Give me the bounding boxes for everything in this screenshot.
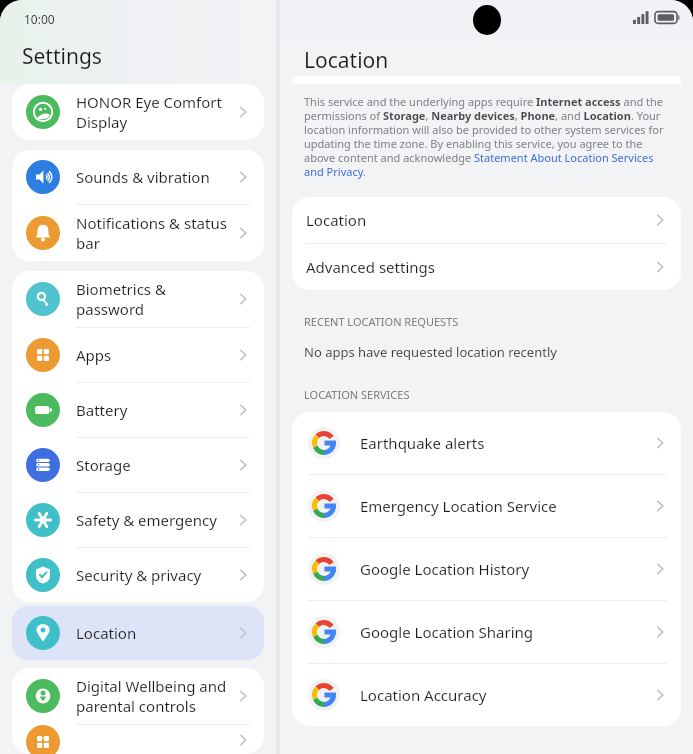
staticText: Location Accuracy bbox=[360, 685, 647, 705]
button[interactable]: Safety & emergency bbox=[12, 493, 264, 547]
button[interactable]: HONOR Eye Comfort Display bbox=[12, 84, 264, 140]
staticText: Google Location History bbox=[360, 559, 647, 579]
button[interactable]: Google Location Sharing bbox=[292, 601, 681, 663]
staticText: Biometrics & password bbox=[76, 279, 230, 319]
staticText: Battery bbox=[76, 400, 230, 420]
staticText: Google Location Sharing bbox=[360, 622, 647, 642]
staticText: Apps bbox=[76, 345, 230, 365]
button[interactable]: Earthquake alerts bbox=[292, 412, 681, 474]
staticText: Location bbox=[304, 46, 389, 75]
button[interactable]: Location bbox=[292, 197, 681, 243]
staticText: Safety & emergency bbox=[76, 510, 230, 530]
staticText: Notifications & status bar bbox=[76, 213, 230, 253]
staticText: This service and the underlying apps req… bbox=[304, 94, 673, 179]
staticText: Advanced settings bbox=[306, 257, 653, 277]
staticText: Digital Wellbeing and parental controls bbox=[76, 676, 230, 716]
button[interactable]: Emergency Location Service bbox=[292, 475, 681, 537]
staticText: Location bbox=[76, 623, 230, 643]
staticText: Storage bbox=[76, 455, 230, 475]
button[interactable] bbox=[12, 725, 264, 754]
button[interactable]: Apps bbox=[12, 328, 264, 382]
staticText: HONOR Eye Comfort Display bbox=[76, 92, 230, 132]
staticText: Security & privacy bbox=[76, 565, 230, 585]
button[interactable]: Sounds & vibration bbox=[12, 150, 264, 204]
button[interactable]: Advanced settings bbox=[292, 244, 681, 290]
staticText: Emergency Location Service bbox=[360, 496, 647, 516]
button[interactable]: Location Accuracy bbox=[292, 664, 681, 726]
staticText: RECENT LOCATION REQUESTS bbox=[304, 314, 459, 329]
button[interactable]: Security & privacy bbox=[12, 548, 264, 602]
button[interactable]: Notifications & status bar bbox=[12, 205, 264, 261]
button[interactable]: Battery bbox=[12, 383, 264, 437]
button[interactable]: Location bbox=[12, 606, 264, 660]
staticText: Earthquake alerts bbox=[360, 433, 647, 453]
staticText: 10:00 bbox=[24, 11, 55, 27]
staticText: No apps have requested location recently bbox=[304, 343, 557, 361]
staticText: Location bbox=[306, 210, 653, 230]
staticText: Sounds & vibration bbox=[76, 167, 230, 187]
staticText: LOCATION SERVICES bbox=[304, 387, 410, 402]
staticText: Settings bbox=[22, 42, 102, 71]
button[interactable]: Google Location History bbox=[292, 538, 681, 600]
button[interactable]: Digital Wellbeing and parental controls bbox=[12, 668, 264, 724]
button[interactable]: Biometrics & password bbox=[12, 271, 264, 327]
button[interactable]: Storage bbox=[12, 438, 264, 492]
